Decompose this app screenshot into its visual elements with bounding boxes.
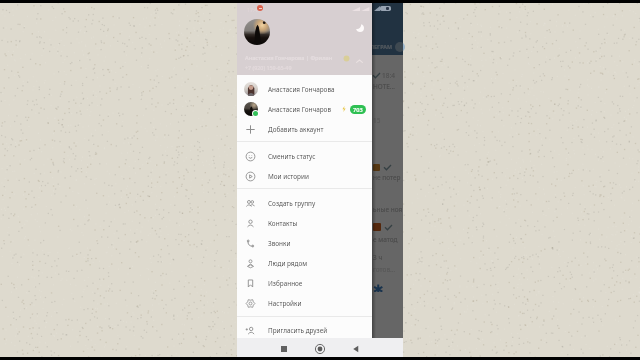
button[interactable]: Создать группу [237,193,372,213]
staticText: +7 (920) 159-65-49 [245,64,292,71]
staticText: Создать группу [268,199,316,208]
staticText: Сменить статус [268,152,316,161]
staticText: е матод [373,235,398,244]
staticText: ьные ноя [373,205,403,214]
staticText: Контакты [268,219,298,228]
staticText: Анастасия Гончаров [268,105,341,114]
button[interactable]: Настройки [237,293,372,313]
button[interactable]: Анастасия Гончаров [237,99,372,119]
staticText: Избранное [268,279,303,288]
staticText: не потер [373,173,401,182]
staticText: Мои истории [268,172,309,181]
button[interactable]: Анастасия Гончарова [237,79,372,99]
button[interactable]: Recent apps [276,341,292,357]
button[interactable]: Home [312,341,328,357]
staticText: 18:4 [382,71,395,80]
button[interactable]: Контакты [237,213,372,233]
staticText: НОТЕ… [373,82,396,91]
button[interactable]: Звонки [237,233,372,253]
staticText: Добавить аккаунт [268,125,324,134]
staticText: 703 [353,106,363,114]
staticText: 15 [373,116,381,125]
button[interactable]: Люди рядом [237,253,372,273]
staticText: 17:43 [247,6,261,13]
staticText: 3 ч [373,253,383,262]
button[interactable]: Back [348,341,364,357]
other: Expand accounts [355,57,364,66]
staticText: Настройки [268,299,302,308]
button[interactable]: Мои истории [237,166,372,186]
staticText: Анастасия Гончарова | Фрилан [245,54,333,62]
button[interactable]: Сменить статус [237,146,372,166]
other: Toggle night mode [356,24,364,32]
staticText: Люди рядом [268,259,308,268]
staticText: Звонки [268,239,291,248]
staticText: Анастасия Гончарова [268,85,366,94]
button[interactable]: Пригласить друзей [237,320,372,340]
staticText: Пригласить друзей [268,326,328,335]
button[interactable]: Избранное [237,273,372,293]
staticText: ТЕЛЕГРАМ [364,43,393,50]
staticText: готов… [373,265,396,274]
button[interactable]: Добавить аккаунт [237,119,372,139]
staticText: ✱ [373,282,384,292]
